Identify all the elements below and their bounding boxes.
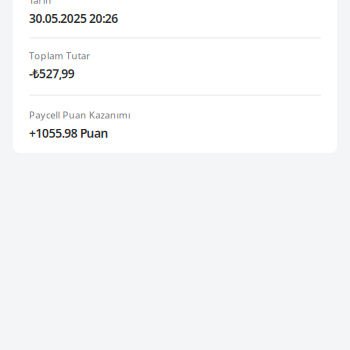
button[interactable]: Toplam Tutar bbox=[13, 38, 337, 95]
staticText: Tarih bbox=[29, 0, 51, 6]
staticText: Toplam Tutar bbox=[29, 49, 90, 62]
staticText: -₺527,99 bbox=[29, 66, 75, 82]
staticText: 30.05.2025 20:26 bbox=[29, 10, 118, 26]
staticText: +1055.98 Puan bbox=[29, 125, 109, 141]
staticText: Paycell Puan Kazanımı bbox=[29, 109, 130, 121]
button[interactable]: Paycell Puan Kazanımı bbox=[13, 96, 337, 153]
button[interactable]: Tarih bbox=[13, 0, 337, 37]
